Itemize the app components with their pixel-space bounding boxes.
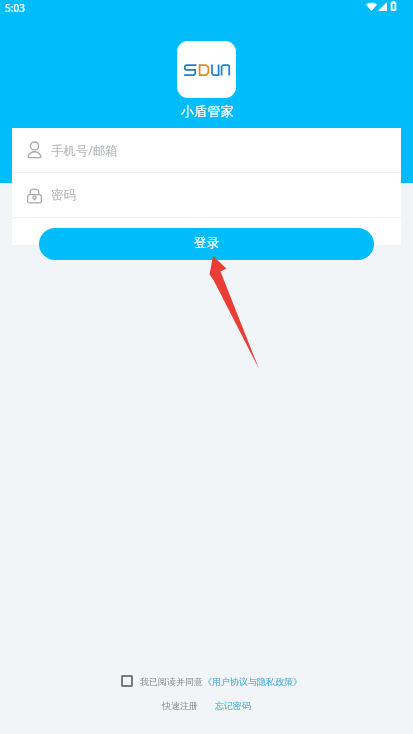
- staticText: 《用户协议与隐私政策》: [203, 676, 302, 687]
- button[interactable]: 登录: [39, 228, 374, 260]
- button[interactable]: 我已阅读并同意: [119, 673, 304, 689]
- staticText: 小盾管家: [181, 103, 234, 120]
- button[interactable]: 密码: [12, 173, 401, 217]
- staticText: 手机号/邮箱: [51, 142, 118, 159]
- staticText: 快速注册: [162, 700, 198, 711]
- staticText: 我已阅读并同意: [140, 676, 203, 687]
- button[interactable]: 忘记密码: [213, 698, 253, 713]
- staticText: 密码: [51, 187, 76, 203]
- staticText: 登录: [194, 235, 219, 251]
- button[interactable]: 手机号/邮箱: [12, 128, 401, 172]
- button[interactable]: 快速注册: [160, 698, 200, 713]
- staticText: 忘记密码: [215, 700, 251, 711]
- staticText: 5:03: [5, 1, 25, 15]
